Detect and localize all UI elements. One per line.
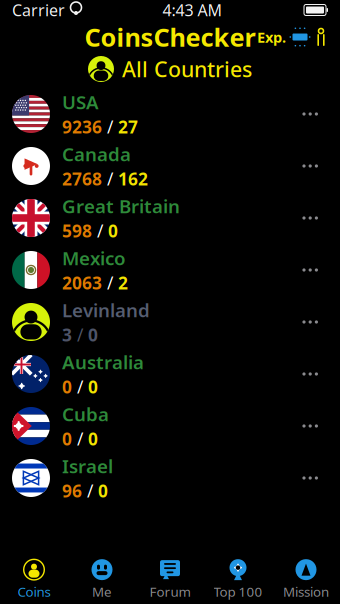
staticText: Me	[92, 583, 112, 600]
staticText: Carrier	[12, 0, 65, 21]
staticText: CoinsChecker	[84, 20, 255, 54]
staticText: 0	[108, 219, 118, 242]
staticText: 2768	[62, 167, 102, 190]
staticText: Mission	[283, 583, 329, 600]
button[interactable]: Exposure settings	[253, 21, 332, 53]
button[interactable]: USA	[0, 88, 340, 140]
staticText: 3	[62, 323, 72, 346]
staticText: /	[92, 219, 108, 242]
button[interactable]: Israel	[0, 452, 340, 504]
staticText: Cuba	[62, 402, 109, 426]
staticText: Israel	[62, 454, 113, 478]
button[interactable]: Mission	[272, 555, 340, 604]
staticText: Levinland	[62, 298, 150, 322]
staticText: 0	[98, 479, 108, 502]
staticText: 4:43 AM	[162, 0, 222, 21]
staticText: /	[72, 323, 88, 346]
button[interactable]: Levinland	[0, 296, 340, 348]
staticText: Forum	[149, 583, 190, 600]
staticText: 2	[118, 271, 128, 294]
staticText: /	[102, 167, 118, 190]
staticText: Coins	[17, 583, 50, 600]
button[interactable]: All Countries	[78, 54, 262, 84]
staticText: /	[82, 479, 98, 502]
staticText: USA	[62, 90, 99, 114]
button[interactable]: Top 100	[204, 555, 272, 604]
staticText: 598	[62, 219, 92, 242]
button[interactable]: Australia	[0, 348, 340, 400]
button[interactable]: Forum	[136, 555, 204, 604]
staticText: 27	[118, 115, 138, 138]
staticText: /	[102, 115, 118, 138]
staticText: 0	[62, 427, 72, 450]
staticText: Australia	[62, 350, 144, 374]
staticText: 2063	[62, 271, 102, 294]
staticText: 0	[88, 427, 98, 450]
staticText: /	[72, 427, 88, 450]
button[interactable]: Canada	[0, 140, 340, 192]
button[interactable]: Great Britain	[0, 192, 340, 244]
staticText: /	[102, 271, 118, 294]
staticText: 0	[88, 323, 98, 346]
button[interactable]: Me	[68, 555, 136, 604]
staticText: Canada	[62, 142, 131, 166]
staticText: 0	[62, 375, 72, 398]
staticText: 0	[88, 375, 98, 398]
staticText: 9236	[62, 115, 102, 138]
staticText: Great Britain	[62, 194, 180, 218]
button[interactable]: Cuba	[0, 400, 340, 452]
staticText: /	[72, 375, 88, 398]
staticText: Exp.	[257, 27, 286, 47]
staticText: Mexico	[62, 246, 126, 270]
staticText: 162	[118, 167, 148, 190]
staticText: 96	[62, 479, 82, 502]
staticText: All Countries	[122, 55, 252, 83]
button[interactable]: Mexico	[0, 244, 340, 296]
staticText: Top 100	[213, 583, 262, 600]
button[interactable]: Coins	[0, 555, 68, 604]
